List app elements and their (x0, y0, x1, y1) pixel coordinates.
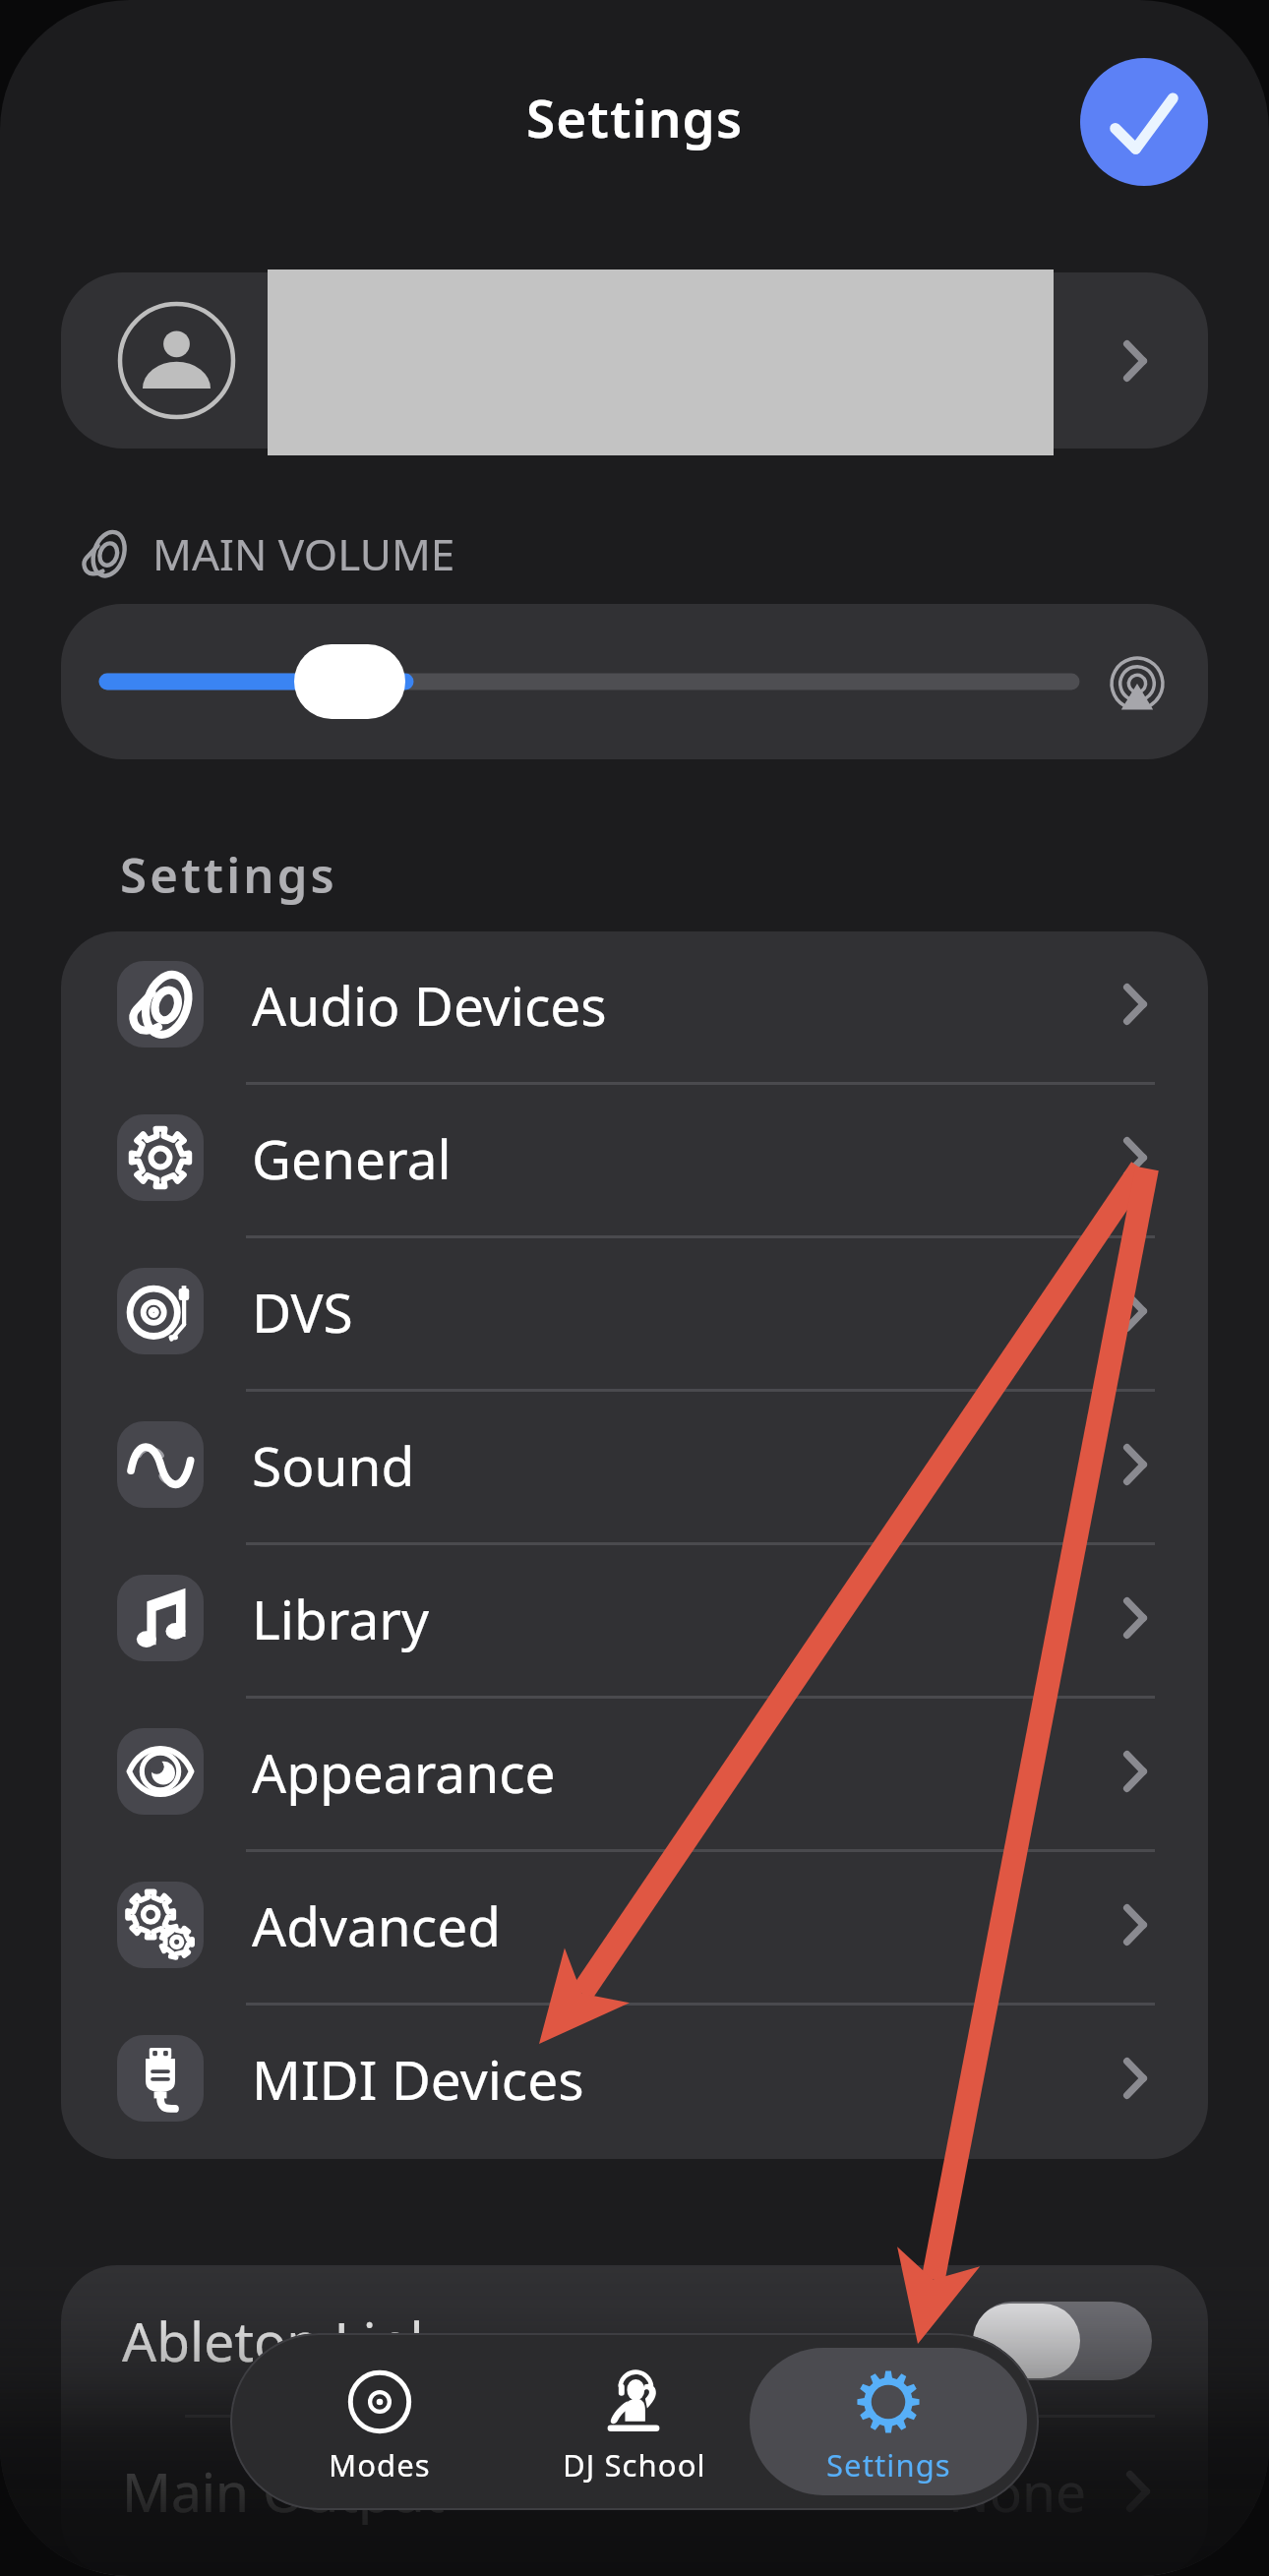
staticText: Settings (826, 2444, 951, 2486)
button[interactable]: Ableton Link (61, 2265, 1208, 2416)
staticText: MAIN VOLUME (152, 524, 455, 583)
button[interactable]: Modes (251, 2348, 509, 2495)
staticText: Audio Devices (252, 968, 607, 1042)
staticText: Modes (329, 2444, 431, 2486)
staticText: None (948, 2454, 1087, 2528)
button[interactable]: Settings (759, 2348, 1017, 2495)
staticText: Library (252, 1582, 430, 1655)
button[interactable] (61, 272, 1208, 449)
button[interactable]: Confirm (1080, 58, 1208, 186)
staticText: DVS (252, 1275, 353, 1348)
staticText: Ableton Link (122, 2304, 439, 2377)
staticText: MIDI Devices (252, 2042, 584, 2116)
staticText: Sound (252, 1428, 415, 1502)
button[interactable]: Main Output (61, 2416, 1208, 2566)
button[interactable]: Library (61, 1545, 1208, 1699)
staticText: Settings (120, 842, 337, 908)
staticText: General (252, 1121, 452, 1195)
button[interactable]: DVS (61, 1238, 1208, 1392)
button[interactable]: Appearance (61, 1699, 1208, 1852)
button[interactable]: Advanced (61, 1852, 1208, 2006)
staticText: Advanced (252, 1888, 502, 1962)
button[interactable]: General (61, 1085, 1208, 1238)
button[interactable]: Sound (61, 1392, 1208, 1545)
staticText: Main Output (122, 2454, 445, 2528)
button[interactable]: DJ School (506, 2348, 763, 2495)
staticText: DJ School (563, 2444, 706, 2486)
button[interactable]: MIDI Devices (61, 2006, 1208, 2159)
staticText: Settings (526, 82, 744, 152)
button[interactable]: Ableton Link toggle (973, 2302, 1152, 2380)
button[interactable]: Audio Devices (61, 931, 1208, 1085)
staticText: Appearance (252, 1735, 556, 1809)
